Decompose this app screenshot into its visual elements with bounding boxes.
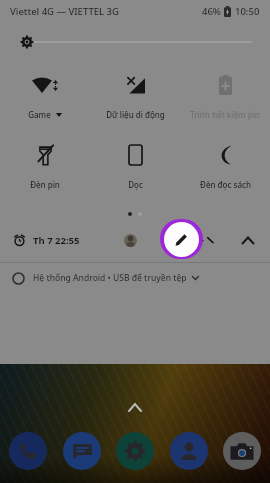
staticText: Viettel 4G — VIETTEL 3G: [10, 5, 119, 18]
button[interactable]: Dọc: [90, 140, 180, 192]
button[interactable]: User: [124, 234, 137, 247]
staticText: Hệ thống Android • USB để truyền tệp: [33, 272, 187, 284]
button[interactable]: Collapse: [238, 233, 258, 248]
button[interactable]: Messages: [63, 432, 101, 470]
staticText: Đèn pin: [30, 179, 60, 190]
button[interactable]: Phone: [9, 432, 47, 470]
button[interactable]: Hệ thống Android • USB để truyền tệp: [0, 263, 270, 293]
button[interactable]: Trình tiết kiệm pin: [180, 70, 270, 122]
staticText: Trình tiết kiệm pin: [190, 109, 260, 120]
button[interactable]: [0, 28, 270, 56]
button[interactable]: Đèn đọc sách: [180, 140, 270, 192]
button[interactable]: Th 7 22:55: [33, 234, 80, 247]
button[interactable]: Settings: [189, 232, 206, 249]
staticText: 46%: [202, 5, 221, 18]
button[interactable]: Đèn pin: [0, 140, 90, 192]
staticText: Dữ liệu di động: [106, 109, 165, 120]
staticText: Dọc: [128, 179, 143, 190]
button[interactable]: Dữ liệu di động: [90, 70, 180, 122]
button[interactable]: Camera: [223, 432, 261, 470]
button[interactable]: Alarm: [12, 233, 27, 248]
staticText: 10:50: [235, 5, 260, 18]
button[interactable]: Edit: [160, 219, 203, 259]
staticText: Đèn đọc sách: [200, 179, 251, 190]
button[interactable]: Game: [0, 70, 90, 122]
staticText: Game: [28, 109, 51, 120]
button[interactable]: Contacts: [170, 432, 208, 470]
button[interactable]: Settings: [116, 432, 154, 470]
